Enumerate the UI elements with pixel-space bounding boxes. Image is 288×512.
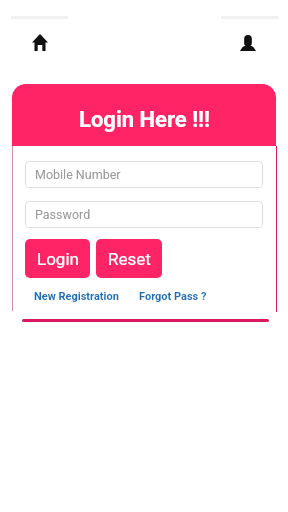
staticText: Login [37, 249, 79, 269]
staticText: Reset [108, 249, 151, 269]
staticText: Forgot Pass ? [139, 290, 207, 303]
button[interactable]: New Registration [34, 290, 119, 303]
button[interactable]: Reset [96, 239, 162, 278]
button[interactable]: Profile [234, 29, 261, 56]
button[interactable]: Forgot Pass ? [139, 290, 207, 303]
staticText: Password [35, 207, 91, 222]
button[interactable]: Home [26, 29, 53, 56]
staticText: Login Here !!! [79, 107, 210, 133]
staticText: New Registration [34, 290, 119, 303]
staticText: Mobile Number [35, 167, 121, 182]
button[interactable]: Mobile Number [25, 161, 263, 188]
button[interactable]: Password [25, 201, 263, 228]
button[interactable]: Login [25, 239, 90, 278]
